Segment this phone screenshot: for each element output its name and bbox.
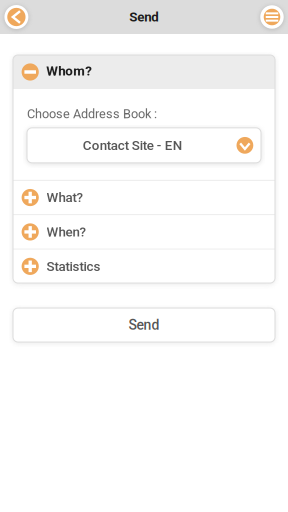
staticText: Statistics <box>46 258 100 274</box>
button[interactable]: Statistics <box>13 250 275 283</box>
button[interactable]: Menu <box>256 0 288 34</box>
button[interactable]: What? <box>13 181 275 214</box>
button[interactable]: Whom? <box>13 55 275 89</box>
staticText: What? <box>46 190 82 205</box>
staticText: Choose Address Book : <box>27 106 157 121</box>
button[interactable]: Contact Site - EN <box>27 128 261 163</box>
staticText: Send <box>128 317 159 333</box>
button[interactable]: When? <box>13 215 275 249</box>
button[interactable]: Back <box>0 0 32 34</box>
staticText: Contact Site - EN <box>83 137 182 153</box>
button[interactable]: Send <box>13 308 275 342</box>
staticText: When? <box>46 224 85 240</box>
staticText: Send <box>129 9 159 25</box>
staticText: Whom? <box>46 63 92 79</box>
